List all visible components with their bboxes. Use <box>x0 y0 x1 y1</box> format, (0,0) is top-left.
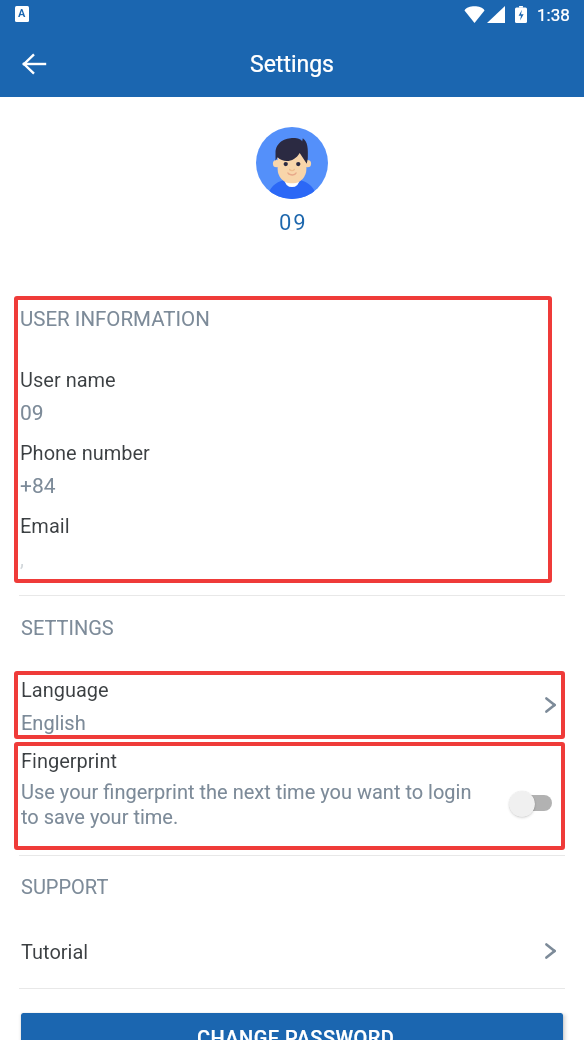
button[interactable]: Back <box>14 44 54 84</box>
staticText: Phone number <box>20 441 150 464</box>
button[interactable]: Tutorial <box>0 925 584 977</box>
button[interactable]: Fingerprint <box>14 742 565 850</box>
staticText: 09 <box>20 401 44 426</box>
staticText: 1:38 <box>537 5 570 25</box>
staticText: , <box>20 547 24 570</box>
staticText: CHANGE PASSWORD <box>197 1026 395 1040</box>
staticText: A <box>18 7 26 20</box>
staticText: SETTINGS <box>21 616 114 639</box>
button[interactable]: Language <box>14 671 565 739</box>
staticText: Language <box>21 678 109 701</box>
staticText: SUPPORT <box>21 875 109 898</box>
staticText: Fingerprint <box>21 749 118 772</box>
staticText: Email <box>20 514 70 537</box>
staticText: +84 <box>20 474 56 499</box>
staticText: 09 <box>279 210 308 236</box>
button[interactable]: CHANGE PASSWORD <box>21 1013 563 1040</box>
button[interactable]: Fingerprint toggle <box>491 786 553 822</box>
staticText: Tutorial <box>21 940 89 963</box>
staticText: USER INFORMATION <box>20 307 210 331</box>
staticText: User name <box>20 368 116 391</box>
staticText: Use your fingerprint the next time you w… <box>21 780 473 829</box>
staticText: Settings <box>250 51 334 78</box>
staticText: English <box>21 711 86 734</box>
